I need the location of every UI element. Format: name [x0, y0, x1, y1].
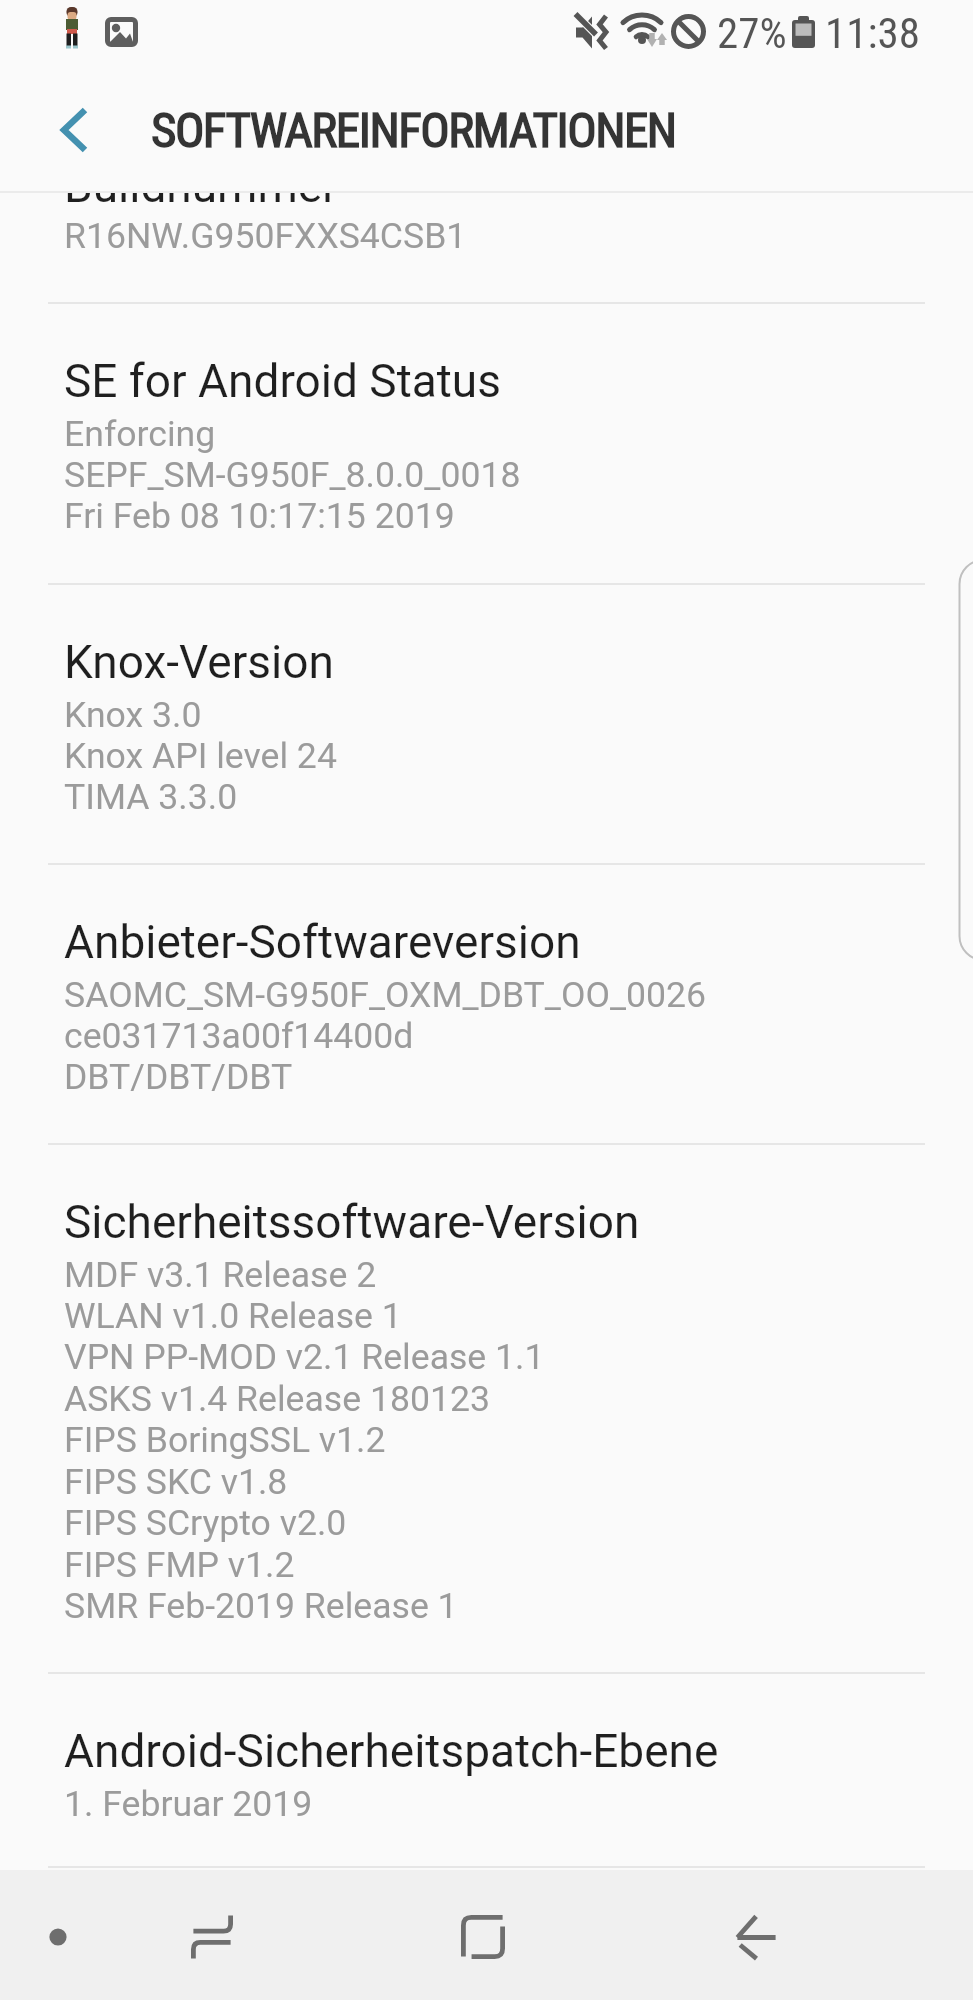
button[interactable]: Anbieter-Softwareversion: [0, 863, 973, 1143]
staticText: FIPS SKC v1.8: [64, 1461, 288, 1503]
staticText: Knox 3.0: [64, 694, 202, 736]
staticText: FIPS BoringSSL v1.2: [64, 1419, 386, 1461]
staticText: SEPF_SM-G950F_8.0.0_0018: [64, 454, 521, 496]
staticText: R16NW.G950FXXS4CSB1: [64, 215, 467, 257]
staticText: Anbieter-Softwareversion: [64, 915, 581, 969]
staticText: Fri Feb 08 10:17:15 2019: [64, 495, 455, 537]
staticText: Android-Sicherheitspatch-Ebene: [64, 1724, 719, 1778]
staticText: FIPS SCrypto v2.0: [64, 1502, 347, 1544]
staticText: TIMA 3.3.0: [64, 776, 238, 818]
staticText: SE for Android Status: [64, 354, 501, 408]
button[interactable]: Android-Sicherheitspatch-Ebene: [0, 1672, 973, 1866]
staticText: SOFTWAREINFORMATIONEN: [151, 102, 676, 159]
button[interactable]: Home: [434, 1872, 532, 2000]
staticText: Sicherheitssoftware-Version: [64, 1195, 640, 1249]
button[interactable]: Back: [15, 73, 133, 186]
button[interactable]: Buildnummer: [0, 193, 973, 302]
staticText: Enforcing: [64, 413, 216, 455]
button[interactable]: Show keyboard: [22, 1872, 94, 2000]
button[interactable]: SE for Android Status: [0, 302, 973, 583]
staticText: SMR Feb-2019 Release 1: [64, 1585, 458, 1627]
staticText: 11:38: [825, 8, 920, 58]
staticText: Knox API level 24: [64, 735, 337, 777]
staticText: ce031713a00f14400d: [64, 1015, 414, 1057]
staticText: FIPS FMP v1.2: [64, 1544, 295, 1586]
staticText: 27%: [717, 8, 787, 58]
staticText: ASKS v1.4 Release 180123: [64, 1378, 490, 1420]
staticText: VPN PP-MOD v2.1 Release 1.1: [64, 1336, 545, 1378]
staticText: Knox-Version: [64, 635, 334, 689]
staticText: MDF v3.1 Release 2: [64, 1254, 377, 1296]
staticText: SAOMC_SM-G950F_OXM_DBT_OO_0026: [64, 974, 706, 1016]
staticText: Buildnummer: [64, 193, 338, 213]
button[interactable]: Recent apps: [163, 1872, 261, 2000]
staticText: 1. Februar 2019: [64, 1783, 313, 1825]
staticText: DBT/DBT/DBT: [64, 1056, 293, 1098]
button[interactable]: Back: [704, 1872, 808, 2000]
button[interactable]: Knox-Version: [0, 583, 973, 863]
staticText: WLAN v1.0 Release 1: [64, 1295, 402, 1337]
button[interactable]: Sicherheitssoftware-Version: [0, 1143, 973, 1672]
